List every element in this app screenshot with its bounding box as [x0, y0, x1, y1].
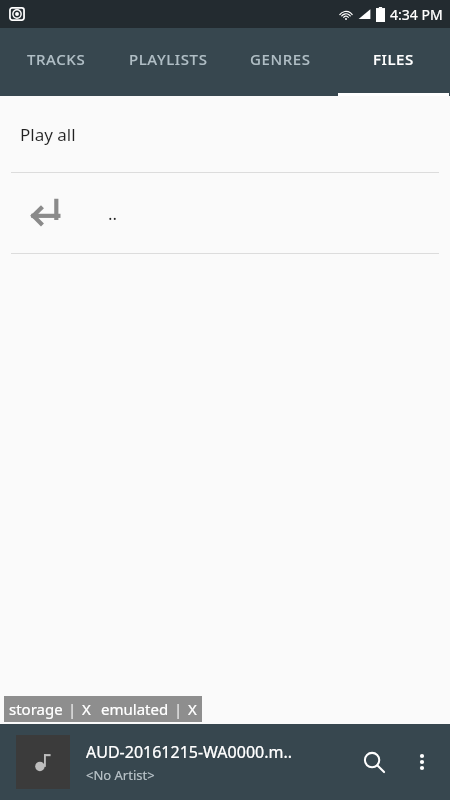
- staticText: GENRES: [250, 49, 311, 69]
- button[interactable]: Search: [350, 738, 398, 786]
- staticText: X: [188, 699, 197, 719]
- staticText: PLAYLISTS: [129, 49, 208, 69]
- button[interactable]: GENRES: [224, 28, 337, 96]
- button[interactable]: Play all: [0, 96, 450, 172]
- staticText: X: [82, 699, 91, 719]
- staticText: FILES: [373, 49, 414, 69]
- staticText: 4:34 PM: [390, 5, 443, 24]
- button[interactable]: AUD-20161215-WA0000.m..: [0, 724, 450, 800]
- staticText: |: [68, 699, 77, 719]
- staticText: <No Artist>: [86, 766, 155, 784]
- button[interactable]: FILES: [337, 28, 450, 96]
- button[interactable]: PLAYLISTS: [112, 28, 224, 96]
- staticText: Play all: [20, 123, 76, 146]
- staticText: emulated: [101, 699, 169, 719]
- button[interactable]: emulated: [96, 696, 202, 722]
- button[interactable]: TRACKS: [0, 28, 112, 96]
- button[interactable]: More options: [398, 738, 446, 786]
- staticText: TRACKS: [27, 49, 86, 69]
- staticText: ..: [108, 202, 118, 225]
- staticText: storage: [9, 699, 63, 719]
- button[interactable]: storage: [4, 696, 96, 722]
- button[interactable]: ..: [0, 173, 450, 253]
- staticText: |: [174, 699, 183, 719]
- staticText: AUD-20161215-WA0000.m..: [86, 741, 293, 763]
